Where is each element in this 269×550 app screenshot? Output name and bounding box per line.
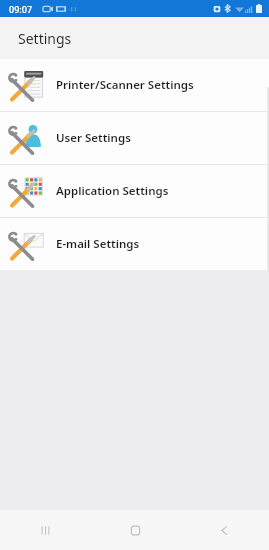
staticText: Settings (18, 29, 72, 48)
button[interactable]: Home (113, 510, 157, 550)
button[interactable]: E-mail Settings (0, 218, 269, 270)
button[interactable]: User Settings (0, 112, 269, 164)
staticText: E-mail Settings (56, 236, 140, 252)
staticText: User Settings (56, 130, 131, 146)
button[interactable]: Application Settings (0, 165, 269, 217)
button[interactable]: Recent apps (23, 510, 67, 550)
button[interactable]: Printer/Scanner Settings (0, 59, 269, 111)
staticText: Application Settings (56, 183, 169, 199)
staticText: Printer/Scanner Settings (56, 77, 194, 93)
button[interactable]: Back (202, 510, 246, 550)
staticText: 09:07 (9, 3, 33, 15)
